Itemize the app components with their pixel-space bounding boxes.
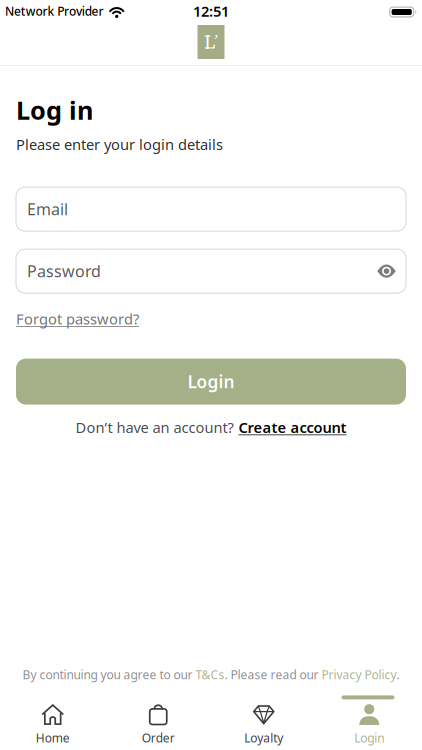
staticText: Create account [238,418,346,437]
staticText: 12:51 [193,1,229,21]
staticText: By continuing you agree to our [22,666,195,682]
staticText: . [396,666,399,682]
staticText: Loyalty [244,730,283,746]
button[interactable]: T&Cs [195,666,224,682]
staticText: Login [354,730,384,746]
staticText: Forgot password? [16,309,139,329]
staticText: Login [187,370,234,393]
staticText: T&Cs [195,666,224,682]
button[interactable]: Login [16,359,406,405]
staticText: . Please read our [224,666,321,682]
staticText: Please enter your login details [16,135,223,154]
button[interactable]: Forgot password? [16,309,139,329]
staticText: Privacy Policy [321,666,396,682]
button[interactable]: Order [105,703,211,746]
button[interactable]: Privacy Policy [321,666,396,682]
button[interactable]: Password [16,249,406,293]
staticText: Home [36,730,70,746]
staticText: Log in [16,93,93,127]
staticText: Order [142,730,175,746]
staticText: Network Provider [5,3,103,19]
button[interactable]: Loyalty [211,703,316,746]
button[interactable]: Email [16,187,406,231]
button[interactable]: Home [0,703,105,746]
staticText: L’ [204,29,218,55]
staticText: Password [27,260,101,282]
staticText: Don’t have an account? [75,418,233,437]
button[interactable]: Create account [238,418,346,437]
staticText: Email [27,198,68,220]
button[interactable]: Login [316,703,422,746]
button[interactable]: Show password [377,265,396,277]
